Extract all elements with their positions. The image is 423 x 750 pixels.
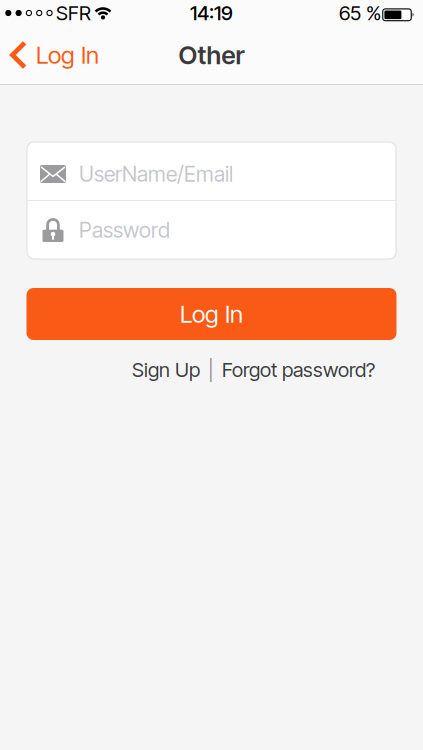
- button[interactable]: UserName/Email: [27, 142, 396, 200]
- button[interactable]: Log In: [26, 288, 396, 340]
- button[interactable]: Sign Up: [132, 358, 200, 382]
- staticText: UserName/Email: [79, 161, 233, 187]
- staticText: Password: [79, 217, 170, 243]
- staticText: |: [208, 358, 214, 382]
- button[interactable]: Password: [27, 201, 396, 259]
- button[interactable]: Back: [0, 41, 107, 69]
- staticText: Sign Up: [132, 358, 200, 382]
- staticText: Log In: [180, 300, 243, 328]
- staticText: Forgot password?: [222, 358, 375, 382]
- button[interactable]: Forgot password?: [222, 358, 375, 382]
- staticText: 14:19: [190, 1, 233, 25]
- staticText: SFR: [56, 1, 91, 25]
- staticText: 65 %: [339, 1, 381, 25]
- staticText: Other: [178, 40, 244, 70]
- staticText: Log In: [36, 41, 99, 69]
